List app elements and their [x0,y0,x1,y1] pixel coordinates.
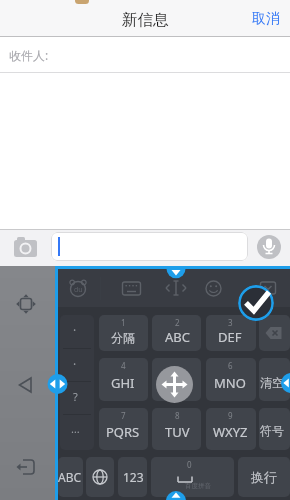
staticText: TUV [165,423,190,441]
button[interactable] [47,374,68,394]
staticText: 8 [175,410,180,421]
staticText: du [74,285,83,295]
staticText: WXYZ [213,423,248,441]
button[interactable] [13,372,39,398]
staticText: 符号 [260,423,284,438]
button[interactable] [206,358,256,401]
button[interactable] [99,358,148,401]
staticText: 1 [121,317,126,328]
staticText: 换行 [251,469,277,485]
staticText: 0 [187,459,192,470]
button[interactable]: 收件人: [0,37,290,73]
staticText: 7 [121,410,126,421]
button[interactable] [166,264,186,279]
button[interactable] [156,366,193,403]
button[interactable] [238,285,274,321]
staticText: DEF [218,328,242,346]
button[interactable] [118,457,147,497]
button[interactable] [162,274,190,302]
button[interactable] [166,491,186,500]
button[interactable]: 取消 [244,4,288,34]
button[interactable] [151,457,234,497]
staticText: GHI [111,374,135,392]
staticText: ABC [165,328,190,346]
button[interactable] [206,315,256,351]
staticText: 百度拼音 [185,482,211,490]
staticText: 清空 [260,375,284,390]
button[interactable] [199,274,227,302]
button[interactable] [99,315,148,351]
button[interactable] [99,408,148,450]
staticText: · [73,356,77,372]
button[interactable] [206,408,256,450]
button[interactable] [238,457,290,497]
button[interactable] [259,358,290,401]
button[interactable] [13,291,39,317]
button[interactable] [58,457,83,497]
staticText: PQRS [106,423,140,441]
button[interactable] [152,408,201,450]
staticText: 收件人: [9,47,49,63]
button[interactable] [8,233,46,263]
button[interactable] [60,315,94,450]
button[interactable] [280,373,290,393]
button[interactable] [13,454,39,480]
staticText: 新信息 [122,10,169,30]
button[interactable] [259,408,290,450]
staticText: 123 [123,469,144,485]
staticText: 取消 [252,10,280,28]
button[interactable] [117,274,145,302]
staticText: 4 [121,360,126,371]
staticText: 6 [228,360,233,371]
staticText: 分隔 [111,330,135,345]
staticText: 2 [175,317,180,328]
button[interactable] [259,315,290,351]
button[interactable] [152,358,201,401]
staticText: … [71,421,80,436]
staticText: 3 [228,317,233,328]
button[interactable] [51,232,248,261]
button[interactable] [86,457,114,497]
staticText: ? [73,389,78,404]
staticText: · [73,322,77,338]
button[interactable] [64,274,92,302]
button[interactable] [257,235,281,259]
staticText: 9 [228,410,233,421]
button[interactable] [152,315,201,351]
staticText: MNO [214,374,246,392]
staticText: ABC [58,469,82,485]
button[interactable] [254,274,282,302]
